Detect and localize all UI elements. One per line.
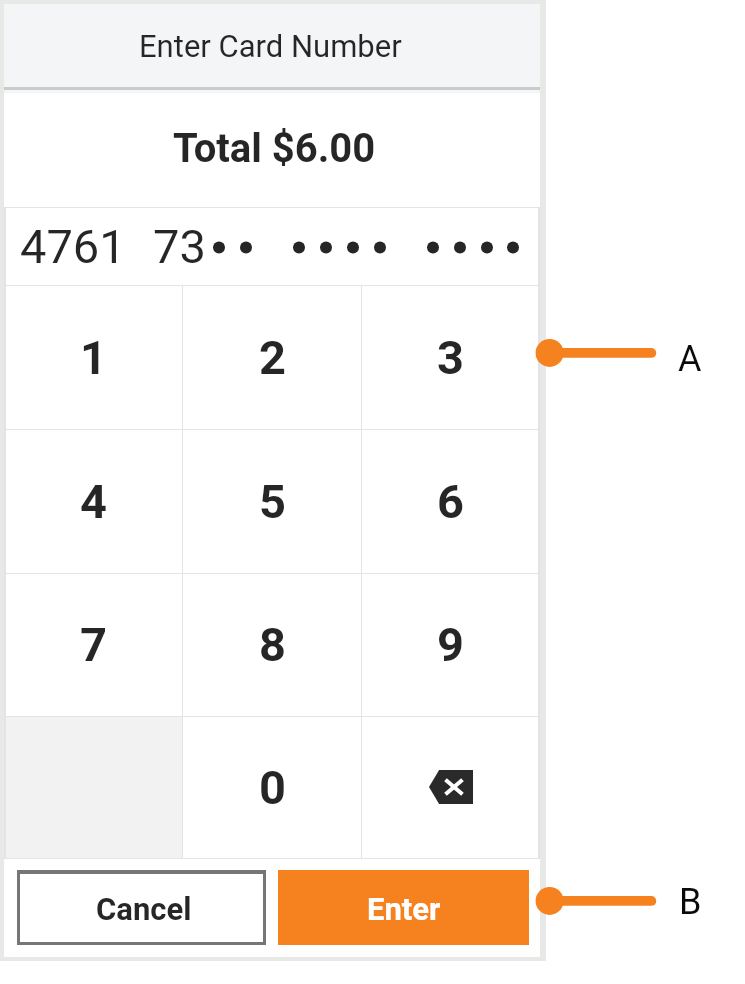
staticText: A (678, 338, 702, 380)
staticText: 4 (80, 474, 107, 529)
staticText: Total $6.00 (173, 125, 376, 172)
button[interactable]: Enter (278, 870, 529, 945)
button[interactable]: 6 (361, 429, 540, 573)
button[interactable]: Cancel (17, 870, 266, 945)
staticText: 8 (259, 617, 286, 672)
staticText: 7 (80, 617, 107, 672)
button[interactable]: Card number 4761 73 (4, 209, 540, 286)
button[interactable]: 3 (361, 286, 540, 429)
staticText: 3 (437, 330, 464, 385)
button[interactable]: 5 (183, 429, 362, 573)
button[interactable]: 4 (4, 429, 183, 573)
staticText: B (679, 881, 702, 923)
staticText: Enter Card Number (139, 28, 402, 64)
button[interactable]: Backspace (361, 716, 540, 858)
staticText: Cancel (96, 891, 192, 927)
staticText: 2 (259, 330, 286, 385)
button[interactable]: 1 (4, 286, 183, 429)
button[interactable]: 0 (183, 716, 362, 858)
staticText: 5 (259, 474, 286, 529)
staticText: 9 (437, 617, 464, 672)
button[interactable]: 7 (4, 573, 183, 716)
staticText: 1 (80, 330, 107, 385)
button[interactable]: 2 (183, 286, 362, 429)
staticText: 0 (259, 760, 286, 815)
staticText: 4761 (20, 219, 126, 274)
staticText: Enter (367, 891, 441, 927)
button[interactable]: 8 (183, 573, 362, 716)
button[interactable]: 9 (361, 573, 540, 716)
staticText: 73 (153, 219, 206, 274)
staticText: 6 (437, 474, 464, 529)
